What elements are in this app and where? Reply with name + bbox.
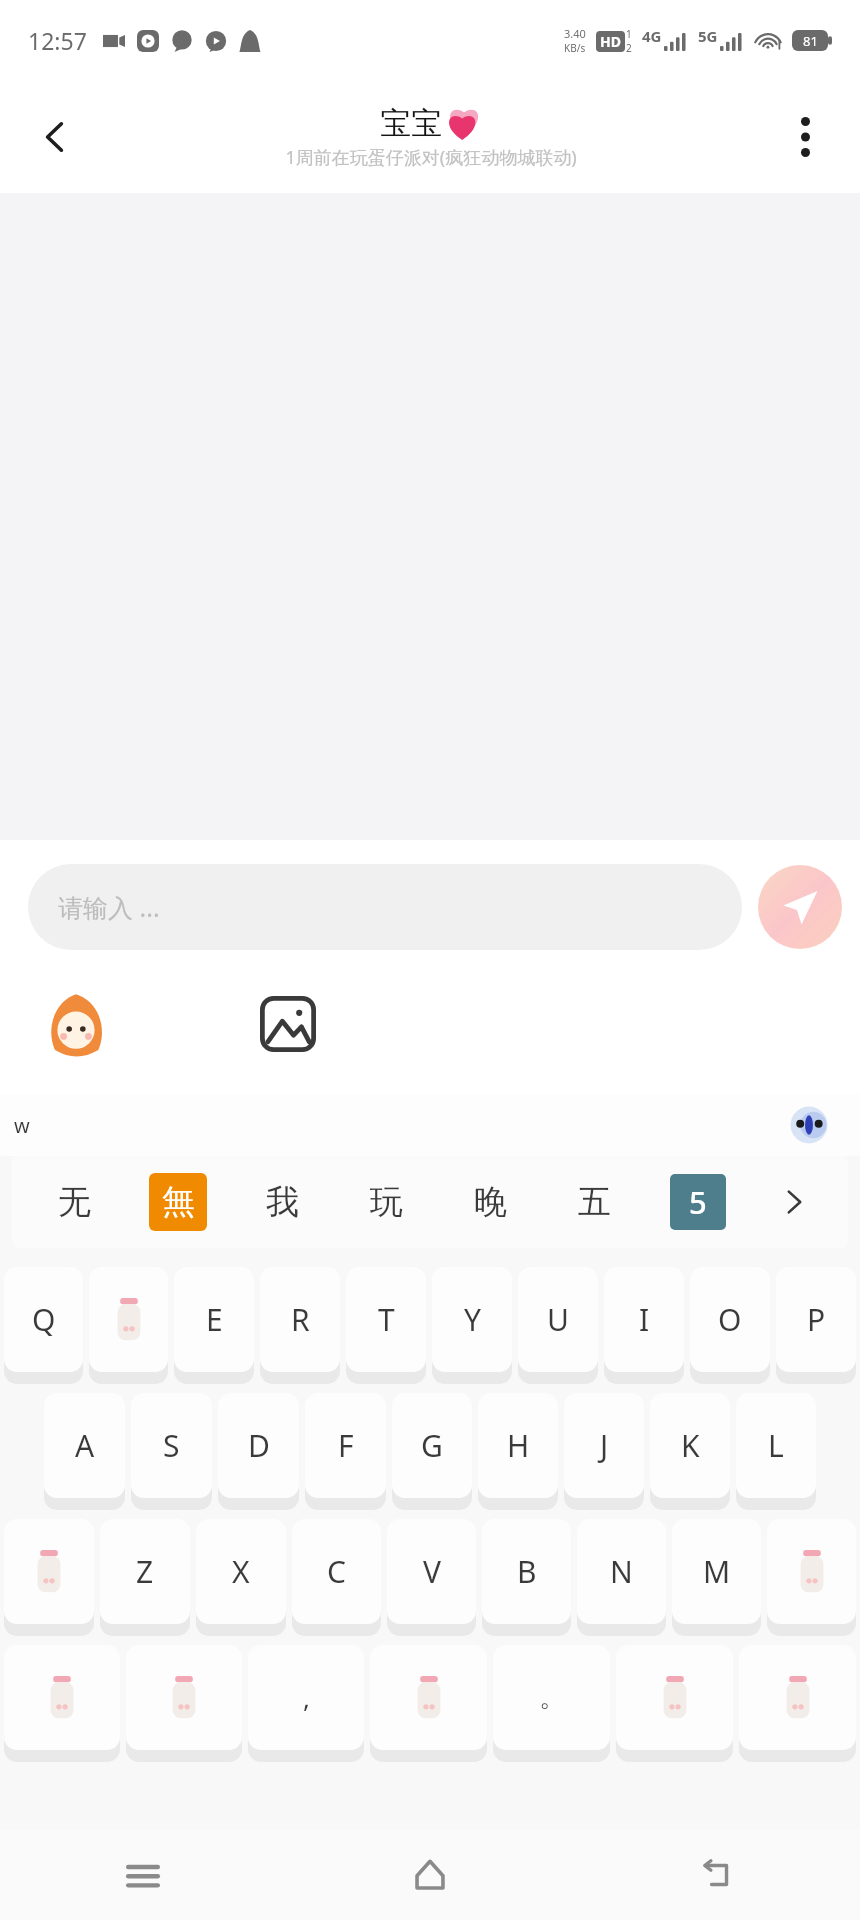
staticText: B [517,1551,537,1592]
staticText: 5 [689,1181,707,1223]
button[interactable]: Back [20,101,92,173]
staticText: 宝宝 [380,104,442,143]
staticText: Z [136,1551,154,1592]
staticText: 玩 [370,1181,403,1223]
button[interactable]: L [736,1393,816,1498]
staticText: H [507,1425,530,1466]
staticText: N [610,1551,633,1592]
staticText: J [600,1425,609,1466]
button[interactable]: G [392,1393,472,1498]
button[interactable]: 。 [493,1645,610,1750]
staticText: O [718,1299,742,1340]
staticText: P [807,1299,826,1340]
staticText: D [248,1425,270,1466]
button[interactable]: A [44,1393,125,1498]
staticText: S [163,1425,180,1466]
staticText: 12:57 [28,25,87,56]
staticText: HD [600,32,621,51]
button[interactable]: Photo [242,978,334,1070]
staticText: 2 [626,41,632,55]
button[interactable]: E [174,1267,254,1372]
button[interactable]: X [196,1519,286,1624]
button[interactable]: Key [89,1267,168,1372]
button[interactable]: J [564,1393,644,1498]
staticText: E [206,1299,223,1340]
staticText: 我 [266,1181,299,1223]
button[interactable]: Home [286,1830,573,1920]
staticText: V [423,1551,441,1592]
staticText: 1周前在玩蛋仔派对(疯狂动物城联动) [285,145,577,170]
button[interactable]: Recents [0,1830,286,1920]
staticText: M [703,1551,731,1592]
button[interactable]: 无 [22,1156,126,1248]
button[interactable]: N [577,1519,666,1624]
button[interactable]: Back [573,1830,860,1920]
staticText: Y [464,1299,481,1340]
button[interactable]: Key [4,1519,94,1624]
staticText: 晚 [474,1181,507,1223]
button[interactable]: Stickers [30,978,122,1070]
staticText: C [327,1551,346,1592]
button[interactable]: Key [616,1645,733,1750]
staticText: 3.40 [564,26,586,41]
button[interactable]: Send [758,865,842,949]
button[interactable]: 我 [230,1156,334,1248]
button[interactable]: More options [772,104,838,170]
staticText: 無 [162,1181,195,1223]
button[interactable]: C [292,1519,381,1624]
button[interactable]: 無 [149,1173,207,1231]
staticText: L [768,1425,784,1466]
staticText: w [14,1112,30,1139]
staticText: U [547,1299,569,1340]
button[interactable]: F [305,1393,386,1498]
button[interactable]: 五 [542,1156,646,1248]
staticText: 1 [626,27,632,41]
staticText: , [303,1680,310,1715]
staticText: G [421,1425,443,1466]
button[interactable]: Q [4,1267,83,1372]
staticText: KB/s [564,41,586,55]
staticText: X [232,1551,250,1592]
staticText: I [639,1299,650,1340]
button[interactable]: B [482,1519,571,1624]
button[interactable]: R [260,1267,340,1372]
staticText: F [338,1425,354,1466]
button[interactable]: Key [370,1645,487,1750]
staticText: 请输入 ... [58,890,160,924]
staticText: Q [32,1299,56,1340]
button[interactable]: Key [4,1645,120,1750]
button[interactable]: More candidates [750,1156,838,1248]
button[interactable]: H [478,1393,558,1498]
button[interactable]: T [346,1267,426,1372]
button[interactable]: 5 [670,1174,726,1230]
staticText: A [75,1425,95,1466]
button[interactable]: Z [100,1519,190,1624]
staticText: 。 [539,1681,565,1714]
button[interactable]: M [672,1519,761,1624]
button[interactable]: O [690,1267,770,1372]
button[interactable]: , [248,1645,364,1750]
button[interactable]: Y [432,1267,512,1372]
staticText: R [291,1299,310,1340]
button[interactable]: 请输入 ... [28,864,742,950]
button[interactable]: P [776,1267,856,1372]
button[interactable]: K [650,1393,730,1498]
button[interactable]: Key [126,1645,242,1750]
staticText: 81 [803,32,818,50]
button[interactable]: 晚 [438,1156,542,1248]
staticText: 无 [58,1181,91,1223]
staticText: T [378,1299,395,1340]
button[interactable]: D [218,1393,299,1498]
button[interactable]: Key [767,1519,856,1624]
button[interactable]: V [387,1519,476,1624]
button[interactable]: Assistant [786,1102,832,1148]
button[interactable]: I [604,1267,684,1372]
button[interactable]: S [131,1393,212,1498]
staticText: 五 [578,1181,611,1223]
staticText: 5G [698,26,718,46]
button[interactable]: Key [739,1645,856,1750]
staticText: K [681,1425,700,1466]
staticText: 4G [642,26,662,46]
button[interactable]: U [518,1267,598,1372]
button[interactable]: 玩 [334,1156,438,1248]
